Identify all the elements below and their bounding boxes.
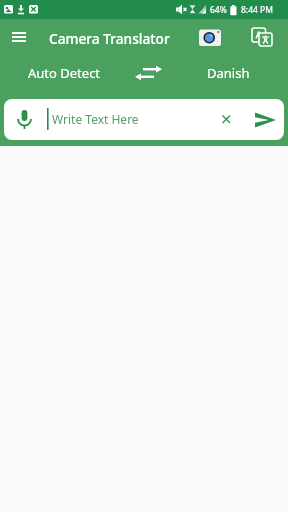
button[interactable] — [194, 23, 226, 51]
button[interactable]: Write Text Here — [4, 99, 284, 140]
staticText: 64% — [210, 4, 227, 16]
staticText: Auto Detect — [28, 64, 101, 82]
button[interactable]: Auto Detect — [14, 59, 114, 87]
staticText: Danish — [207, 64, 250, 82]
button[interactable] — [6, 25, 32, 49]
button[interactable] — [250, 106, 280, 133]
button[interactable] — [8, 104, 40, 135]
button[interactable]: Danish — [190, 59, 266, 87]
button[interactable] — [131, 59, 165, 87]
staticText: Camera Translator — [49, 29, 170, 48]
button[interactable] — [246, 23, 278, 51]
button[interactable] — [213, 106, 239, 132]
staticText: Write Text Here — [52, 111, 139, 127]
staticText: 8:44 PM — [241, 4, 273, 16]
